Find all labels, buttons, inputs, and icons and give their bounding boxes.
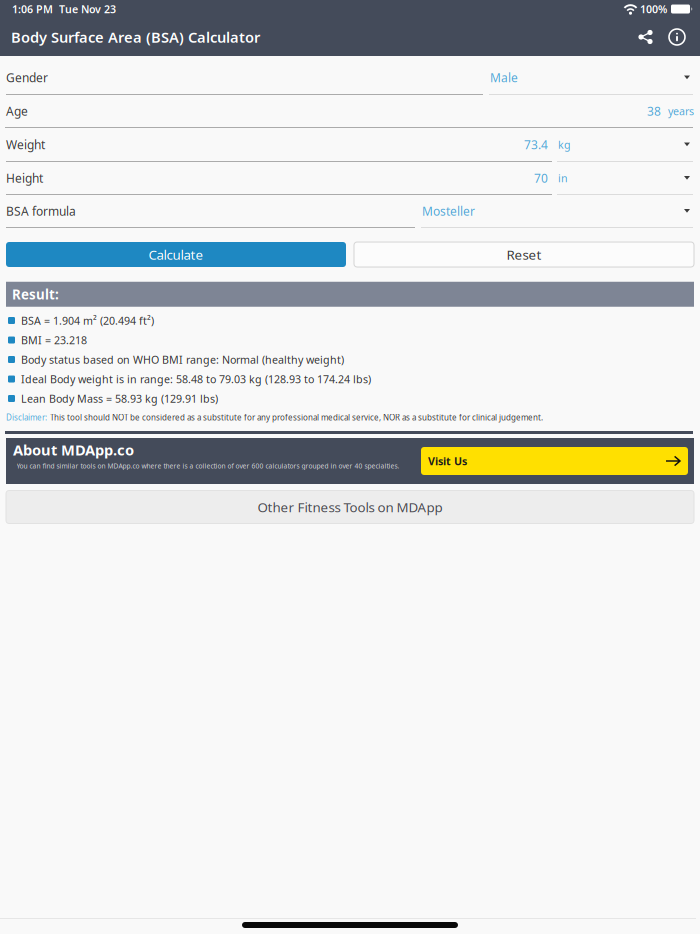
staticText: kg — [558, 137, 571, 152]
staticText: Other Fitness Tools on MDApp — [257, 498, 442, 516]
staticText: Mosteller — [422, 203, 475, 219]
staticText: Calculate — [148, 246, 203, 263]
staticText: Weight — [6, 136, 45, 152]
staticText: About MDApp.co — [13, 440, 134, 459]
button[interactable]: BSA formula — [0, 195, 700, 228]
staticText: BMI = 23.218 — [21, 333, 87, 347]
button[interactable]: Visit Us — [421, 447, 688, 475]
staticText: 1:06 PM — [12, 2, 53, 16]
staticText: BSA = 1.904 m² (20.494 ft²) — [21, 313, 154, 328]
staticText: Ideal Body weight is in range: 58.48 to … — [21, 372, 371, 386]
button[interactable]: Weight — [0, 128, 700, 162]
button[interactable]: Reset — [354, 242, 694, 267]
staticText: Body Surface Area (BSA) Calculator — [11, 27, 260, 47]
staticText: years — [668, 104, 694, 118]
button[interactable]: Share — [630, 18, 661, 56]
staticText: Disclaimer: — [6, 412, 47, 423]
button[interactable]: Calculate — [6, 242, 346, 267]
staticText: 73.4 — [524, 136, 548, 152]
button[interactable]: Height — [0, 162, 700, 195]
staticText: BSA formula — [6, 203, 76, 219]
staticText: Gender — [6, 69, 48, 85]
staticText: in — [558, 171, 568, 185]
button[interactable]: Info — [661, 18, 693, 56]
staticText: 100% — [640, 2, 667, 16]
staticText: Lean Body Mass = 58.93 kg (129.91 lbs) — [21, 391, 218, 406]
staticText: 38 — [647, 103, 661, 119]
staticText: You can find similar tools on MDApp.co w… — [16, 461, 399, 470]
staticText: Result: — [12, 285, 59, 303]
staticText: Reset — [506, 246, 541, 263]
staticText: Height — [6, 170, 43, 186]
button[interactable]: Age — [0, 95, 700, 128]
button[interactable]: Other Fitness Tools on MDApp — [6, 490, 694, 523]
staticText: 70 — [534, 170, 548, 186]
staticText: This tool should NOT be considered as a … — [50, 412, 543, 423]
staticText: Tue Nov 23 — [59, 2, 116, 16]
staticText: Visit Us — [428, 454, 467, 468]
button[interactable]: Gender — [0, 56, 700, 95]
staticText: Body status based on WHO BMI range: Norm… — [21, 352, 344, 367]
staticText: Male — [490, 69, 518, 85]
staticText: Age — [6, 103, 28, 119]
